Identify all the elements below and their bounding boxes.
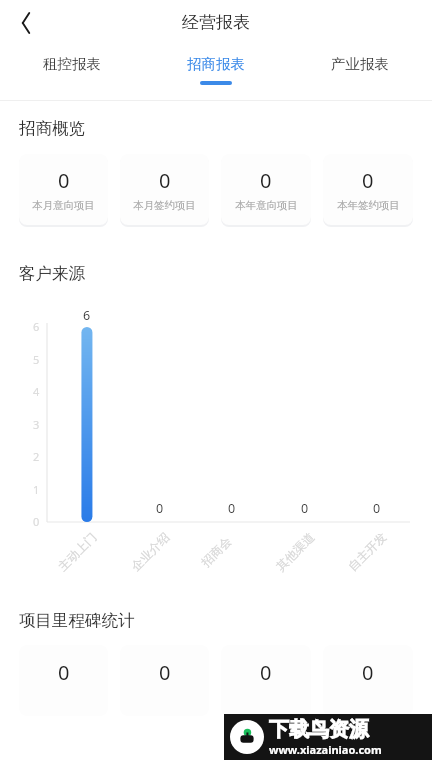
staticText: 0: [301, 500, 309, 517]
button[interactable]: 0: [19, 154, 108, 225]
staticText: 产业报表: [331, 55, 389, 73]
staticText: 6: [33, 319, 40, 334]
button[interactable]: 0: [323, 154, 413, 225]
staticText: 自主开发: [345, 529, 389, 574]
staticText: 招商会: [198, 533, 234, 570]
staticText: 0: [58, 167, 70, 194]
staticText: 6: [83, 307, 91, 324]
button[interactable]: 0: [19, 645, 108, 716]
staticText: 0: [362, 167, 374, 194]
staticText: www.xiazainiao.com: [269, 742, 382, 757]
button[interactable]: 租控报表: [0, 45, 144, 100]
staticText: 0: [159, 167, 171, 194]
staticText: 招商概览: [19, 118, 85, 139]
staticText: 本年意向项目: [235, 199, 298, 212]
staticText: 0: [58, 659, 70, 686]
button[interactable]: 0: [323, 645, 413, 716]
staticText: 0: [362, 659, 374, 686]
button[interactable]: 0: [120, 154, 209, 225]
button[interactable]: 0: [221, 645, 311, 716]
staticText: 0: [260, 659, 272, 686]
button[interactable]: 0: [120, 645, 209, 716]
staticText: 本月签约项目: [133, 199, 196, 212]
staticText: 主动上门: [55, 529, 99, 574]
staticText: 0: [33, 514, 40, 529]
staticText: 租控报表: [43, 55, 101, 73]
staticText: 0: [373, 500, 381, 517]
button[interactable]: 产业报表: [288, 45, 432, 100]
staticText: 0: [260, 167, 272, 194]
staticText: 2: [33, 449, 40, 464]
staticText: 客户来源: [19, 263, 85, 284]
staticText: 0: [228, 500, 236, 517]
staticText: 4: [33, 384, 40, 399]
staticText: 下载鸟资源: [269, 717, 369, 742]
staticText: 0: [156, 500, 164, 517]
button[interactable]: Back: [6, 3, 46, 43]
staticText: 3: [33, 417, 40, 432]
button[interactable]: 0: [221, 154, 311, 225]
staticText: 企业介绍: [128, 529, 172, 574]
staticText: 本年签约项目: [337, 199, 400, 212]
staticText: 招商报表: [187, 55, 245, 73]
staticText: 0: [159, 659, 171, 686]
staticText: 其他渠道: [273, 529, 317, 574]
staticText: 5: [33, 352, 40, 367]
staticText: 经营报表: [182, 12, 250, 33]
staticText: 项目里程碑统计: [19, 610, 135, 631]
staticText: 本月意向项目: [32, 199, 95, 212]
staticText: 1: [33, 482, 40, 497]
button[interactable]: 招商报表: [144, 45, 288, 100]
